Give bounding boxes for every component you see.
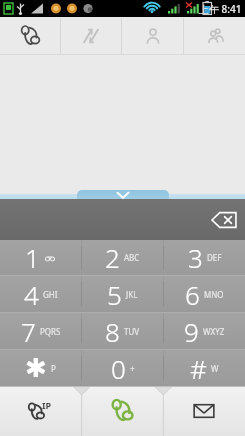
staticText: # xyxy=(190,351,207,386)
staticText: 0 xyxy=(111,351,126,386)
button[interactable]: 7 xyxy=(0,313,81,349)
button[interactable]: 3 xyxy=(164,240,245,275)
staticText: JKL xyxy=(126,289,138,300)
staticText: 上午 8:41 xyxy=(199,2,242,16)
staticText: WXYZ xyxy=(203,326,225,337)
button[interactable]: IP call xyxy=(0,386,81,436)
staticText: PQRS xyxy=(40,326,61,337)
button[interactable]: 6 xyxy=(164,276,245,312)
button[interactable]: 9 xyxy=(164,313,245,349)
button[interactable]: Call log xyxy=(61,17,121,55)
staticText: ABC xyxy=(124,252,140,263)
button[interactable]: ✱ xyxy=(0,350,81,386)
staticText: 4 xyxy=(24,277,39,312)
staticText: 1 xyxy=(25,240,40,275)
staticText: ✱ xyxy=(25,353,47,383)
staticText: 2 xyxy=(105,240,120,275)
button[interactable]: # xyxy=(164,350,245,386)
staticText: DEF xyxy=(207,252,222,263)
button[interactable]: Contacts xyxy=(122,17,183,55)
staticText: 7 xyxy=(21,314,36,349)
button[interactable]: 5 xyxy=(82,276,163,312)
button[interactable]: 2 xyxy=(82,240,163,275)
button[interactable]: Backspace xyxy=(203,199,245,240)
staticText: IP xyxy=(42,399,52,411)
staticText: 8 xyxy=(105,314,120,349)
staticText: TUV xyxy=(124,326,140,337)
button[interactable]: Message xyxy=(163,386,245,436)
button[interactable]: 1 xyxy=(0,240,81,275)
staticText: MNO xyxy=(204,289,224,300)
button[interactable]: Hide dialpad xyxy=(77,190,169,199)
button[interactable]: Dialer xyxy=(0,17,60,55)
button[interactable]: 0 xyxy=(82,350,163,386)
button[interactable]: 8 xyxy=(82,313,163,349)
button[interactable]: Call xyxy=(81,386,163,436)
staticText: 6 xyxy=(185,277,200,312)
button[interactable]: 4 xyxy=(0,276,81,312)
staticText: P xyxy=(51,363,56,374)
button[interactable]: Groups xyxy=(184,17,245,55)
staticText: + xyxy=(130,363,135,374)
staticText: GHI xyxy=(43,289,58,300)
staticText: W xyxy=(211,363,219,374)
staticText: 3 xyxy=(188,240,203,275)
staticText: 5 xyxy=(107,277,122,312)
staticText: 9 xyxy=(184,314,199,349)
